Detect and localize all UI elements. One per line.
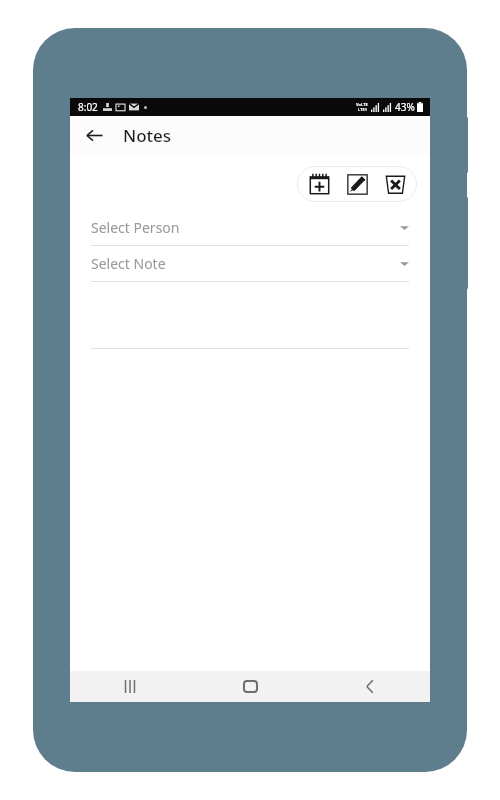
staticText: LTE1 [358, 107, 367, 112]
button[interactable]: Select Person [70, 210, 430, 246]
button[interactable]: Home [190, 671, 310, 702]
staticText: Select Person [91, 218, 180, 237]
staticText: 8:02 [78, 100, 98, 114]
button[interactable]: Delete note [382, 171, 408, 197]
button[interactable]: New note [306, 171, 332, 197]
staticText: 43% [395, 100, 415, 114]
button[interactable]: Back [78, 119, 110, 151]
button[interactable]: Back [310, 671, 430, 702]
staticText: VoLTE [356, 102, 368, 107]
button[interactable] [70, 282, 430, 349]
staticText: Notes [123, 124, 172, 147]
button[interactable]: Recent apps [70, 671, 190, 702]
button[interactable]: Edit note [344, 171, 370, 197]
staticText: Select Note [91, 254, 166, 273]
button[interactable]: Select Note [70, 246, 430, 282]
